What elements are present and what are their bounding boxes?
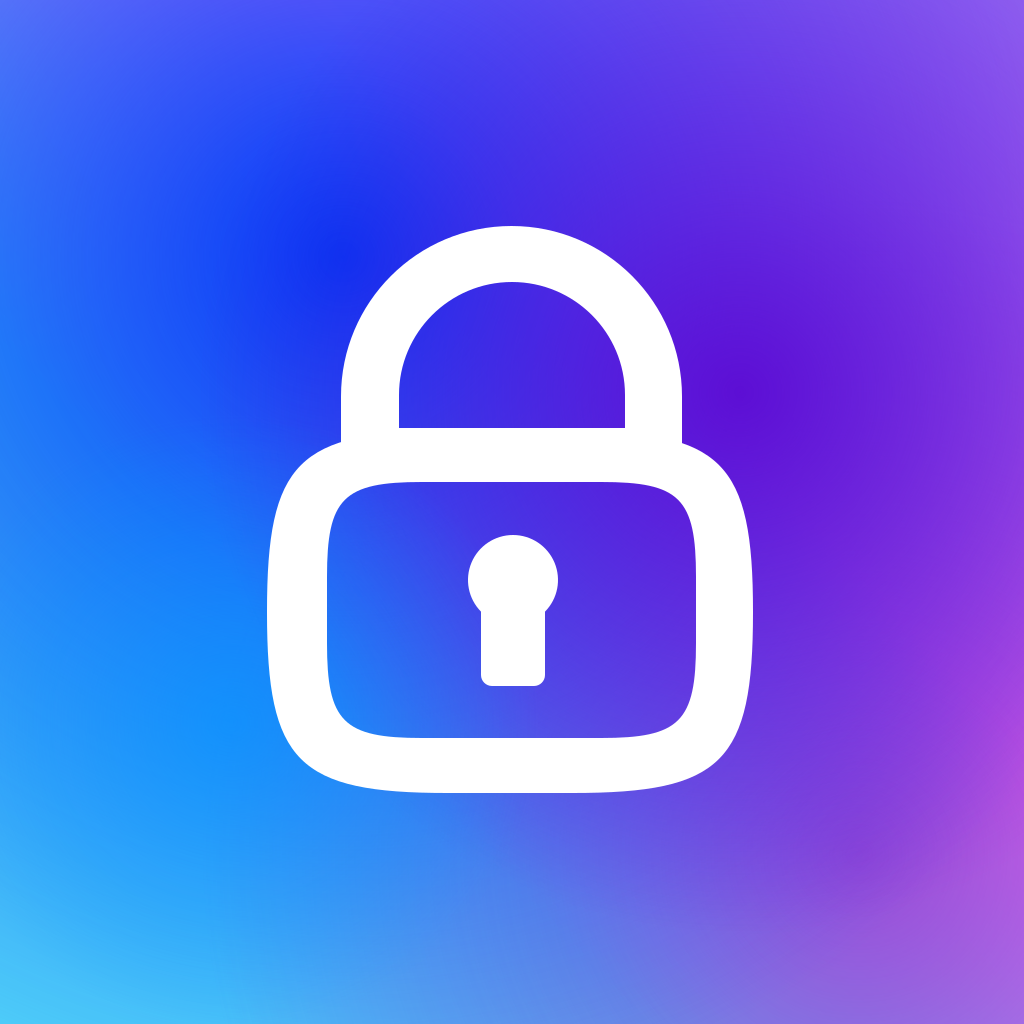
button[interactable]: Unlock xyxy=(0,0,1024,1024)
